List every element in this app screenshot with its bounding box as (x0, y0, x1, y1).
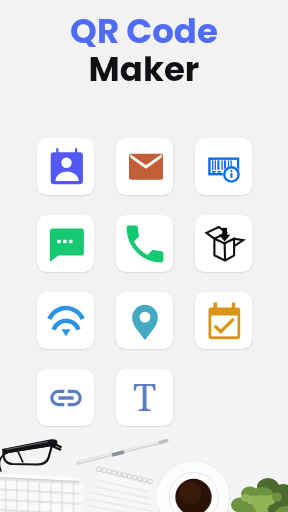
button[interactable]: URL (37, 369, 94, 426)
button[interactable]: Event (195, 292, 252, 349)
button[interactable]: WiFi (37, 292, 94, 349)
button[interactable]: Location (116, 292, 173, 349)
button[interactable]: Product (195, 215, 252, 272)
button[interactable]: Email (116, 138, 173, 195)
staticText: T (133, 370, 157, 422)
button[interactable]: Text (116, 369, 173, 426)
staticText: QR Code Maker (0, 7, 288, 93)
button[interactable]: Phone (116, 215, 173, 272)
button[interactable]: SMS (37, 215, 94, 272)
button[interactable]: Barcode (195, 138, 252, 195)
button[interactable]: Contact (37, 138, 94, 195)
